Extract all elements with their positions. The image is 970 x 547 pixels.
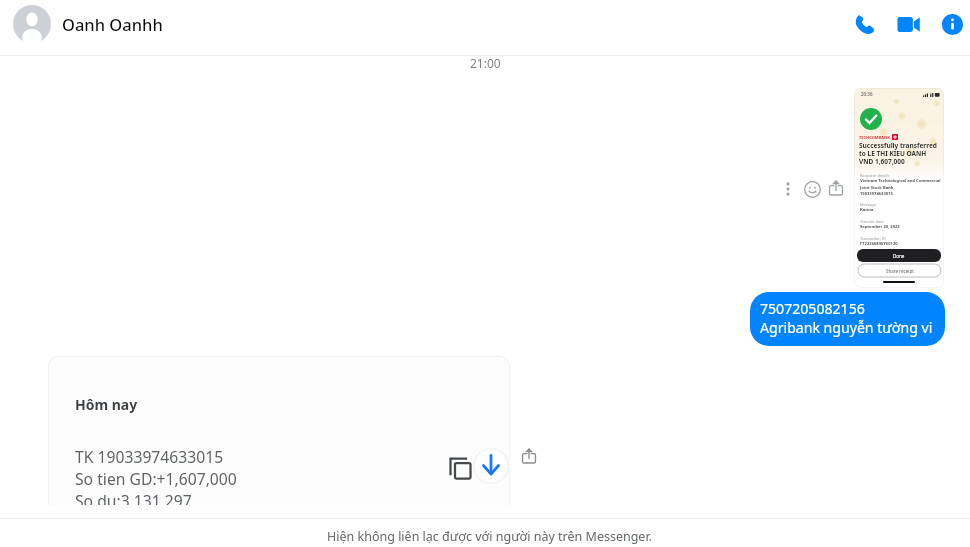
staticText: 21:00 [470,55,501,71]
staticText: Hôm nay [75,395,138,414]
staticText: Agribank nguyễn tường vi [760,318,933,337]
staticText: FT22260896YE0120 [860,241,898,247]
staticText: September 20, 2022 [860,224,900,230]
staticText: Oanh Oanhh [62,13,163,35]
staticText: TK 19033974633015 So tien GD:+1,607,000 … [75,446,237,505]
staticText: Message [860,202,876,207]
button[interactable]: Conversation information [930,2,970,46]
staticText: Hiện không liên lạc được với người này t… [327,528,652,545]
button[interactable]: Hôm nay [48,356,510,505]
staticText: Transfer date [860,219,884,224]
button[interactable]: Forward [826,178,846,198]
button[interactable]: More options [778,179,798,199]
staticText: Vietnam Technological and Commercial Joi… [860,178,941,196]
staticText: Recipient details [860,173,890,178]
button[interactable]: 7507205082156 [750,292,945,346]
button[interactable]: Download [472,446,510,484]
staticText: 20:36 [861,91,873,97]
button[interactable]: Photo attachment [854,88,944,288]
staticText: Karina [860,207,874,213]
staticText: TECHCOMBANK [859,135,890,140]
button[interactable]: Copy [446,454,474,482]
button[interactable]: React [802,179,822,199]
button[interactable]: Video call [886,2,930,46]
button[interactable]: Call [842,2,886,46]
staticText: Done [893,253,905,259]
staticText: Share receipt [886,268,914,274]
staticText: Transaction ID [860,236,886,241]
button[interactable]: Forward message [517,444,541,468]
staticText: Successfully transferred to LE THI KIEU … [859,141,937,166]
staticText: 7507205082156 [760,299,865,318]
